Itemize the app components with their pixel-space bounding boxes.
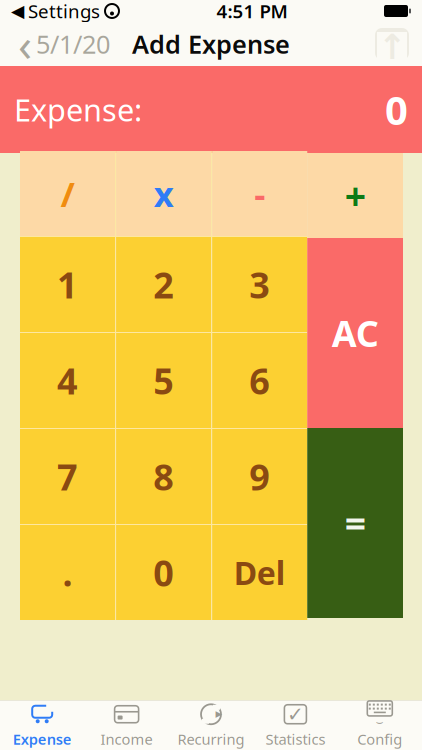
- button[interactable]: 9: [212, 429, 307, 524]
- button[interactable]: +: [307, 153, 403, 238]
- button[interactable]: 5: [116, 333, 211, 428]
- button[interactable]: ‹: [8, 22, 120, 66]
- button[interactable]: 6: [212, 333, 307, 428]
- staticText: Income: [101, 729, 153, 749]
- button[interactable]: Expense: [0, 701, 84, 750]
- staticText: x: [154, 170, 174, 216]
- button[interactable]: ▸: [169, 701, 253, 750]
- staticText: ▸: [215, 706, 222, 721]
- button[interactable]: Share: [370, 22, 414, 66]
- staticText: ◀: [11, 1, 24, 21]
- staticText: 4: [57, 357, 78, 404]
- staticText: 0: [153, 549, 174, 596]
- staticText: 5: [153, 357, 174, 404]
- staticText: 2: [153, 261, 174, 308]
- staticText: =: [345, 498, 366, 548]
- staticText: ↑: [377, 27, 406, 67]
- staticText: 0: [385, 83, 408, 136]
- button[interactable]: AC: [307, 238, 403, 428]
- staticText: 4:51 PM: [216, 0, 287, 23]
- staticText: -: [254, 170, 265, 216]
- button[interactable]: 3: [212, 237, 307, 332]
- staticText: .: [62, 549, 72, 596]
- staticText: ⌣: [376, 716, 384, 728]
- staticText: 7: [57, 453, 78, 500]
- staticText: Expense:: [14, 89, 142, 130]
- staticText: Del: [234, 551, 286, 594]
- button[interactable]: x: [116, 151, 211, 236]
- staticText: Add Expense: [132, 27, 290, 61]
- button[interactable]: 4: [20, 333, 115, 428]
- staticText: Config: [357, 729, 402, 749]
- staticText: Recurring: [177, 729, 244, 749]
- staticText: /: [60, 170, 74, 216]
- staticText: 8: [153, 453, 174, 500]
- staticText: Expense: [13, 729, 72, 749]
- button[interactable]: ✓: [253, 701, 338, 750]
- button[interactable]: .: [20, 525, 115, 620]
- button[interactable]: /: [20, 151, 115, 236]
- button[interactable]: Income: [84, 701, 169, 750]
- button[interactable]: Del: [212, 525, 307, 620]
- staticText: +: [345, 171, 366, 220]
- staticText: 3: [249, 261, 270, 308]
- button[interactable]: -: [212, 151, 307, 236]
- staticText: AC: [332, 309, 379, 357]
- button[interactable]: 2: [116, 237, 211, 332]
- staticText: 6: [249, 357, 270, 404]
- staticText: ✓: [287, 703, 304, 726]
- staticText: Settings: [28, 0, 100, 23]
- button[interactable]: 8: [116, 429, 211, 524]
- button[interactable]: ⌣: [338, 701, 422, 750]
- button[interactable]: 1: [20, 237, 115, 332]
- staticText: 1: [57, 261, 78, 308]
- staticText: 5/1/20: [36, 27, 110, 61]
- staticText: Statistics: [265, 729, 325, 749]
- button[interactable]: =: [307, 428, 403, 618]
- button[interactable]: 0: [116, 525, 211, 620]
- staticText: ‹: [18, 14, 32, 74]
- staticText: 9: [249, 453, 270, 500]
- button[interactable]: 7: [20, 429, 115, 524]
